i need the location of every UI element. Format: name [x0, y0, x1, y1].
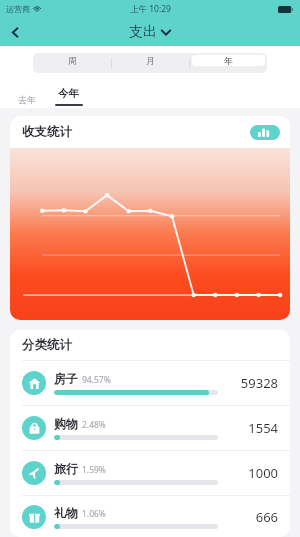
button[interactable]: 礼物 [10, 496, 290, 537]
staticText: 年 [224, 55, 233, 66]
button[interactable]: 购物 [10, 406, 290, 450]
button[interactable]: 今年 [54, 85, 83, 108]
staticText: 1554 [248, 419, 278, 437]
staticText: 1.06% [82, 508, 106, 520]
button[interactable]: 周 [35, 55, 109, 66]
button[interactable]: 房子 [10, 361, 290, 405]
button[interactable]: 月 [114, 55, 187, 66]
staticText: 今年 [58, 87, 79, 100]
staticText: 月 [146, 55, 155, 66]
staticText: 666 [255, 508, 278, 526]
staticText: 收支统计 [22, 124, 72, 140]
staticText: 礼物 [54, 505, 78, 520]
button[interactable]: 年 [192, 55, 265, 66]
staticText: 59328 [240, 374, 278, 392]
staticText: 旅行 [54, 461, 78, 476]
staticText: 1000 [248, 464, 278, 482]
staticText: 分类统计 [22, 337, 72, 353]
staticText: 上午 10:29 [130, 3, 171, 15]
staticText: 支出 [129, 23, 157, 41]
staticText: 去年 [18, 94, 36, 105]
button[interactable]: Back [0, 18, 30, 46]
button[interactable]: 旅行 [10, 451, 290, 495]
staticText: 周 [68, 55, 77, 66]
staticText: 购物 [54, 416, 78, 431]
staticText: 1.59% [82, 464, 106, 476]
button[interactable]: 支出 [129, 23, 171, 41]
staticText: 2.48% [82, 419, 106, 431]
button[interactable]: Chart view [250, 125, 280, 140]
staticText: 运营商 [6, 4, 30, 14]
staticText: 94.57% [82, 374, 111, 386]
staticText: 房子 [54, 371, 78, 386]
button[interactable]: 去年 [14, 91, 40, 108]
